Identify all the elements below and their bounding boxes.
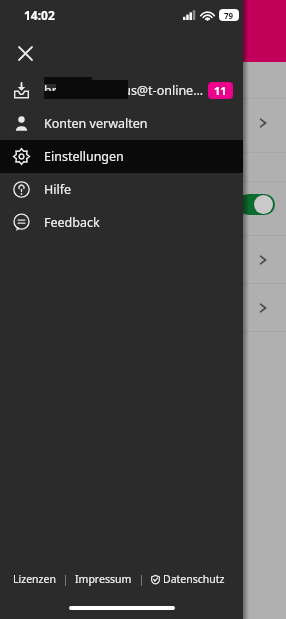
button[interactable]: Lizenzen <box>12 568 57 590</box>
staticText: | <box>133 572 150 586</box>
staticText: Impressum <box>75 572 132 586</box>
staticText: Datenschutz <box>163 572 225 586</box>
button[interactable]: Konten verwalten <box>0 107 243 140</box>
staticText: Hilfe <box>44 181 72 198</box>
staticText: 79 <box>224 10 234 21</box>
staticText: Feedback <box>44 214 100 231</box>
button[interactable]: Feedback <box>0 206 243 239</box>
button[interactable]: Hilfe <box>0 173 243 206</box>
staticText: 14:02 <box>24 7 55 23</box>
button[interactable]: Schließen <box>8 36 42 70</box>
staticText: Konten verwalten <box>44 115 148 132</box>
staticText: Einstellungen <box>44 148 124 165</box>
staticText: 11 <box>214 83 227 98</box>
staticText: | <box>57 572 74 586</box>
button[interactable]: Datenschutz <box>150 568 226 590</box>
staticText: Lizenzen <box>13 572 56 586</box>
button[interactable]: brigitte.nienaus@t-online... <box>0 74 243 107</box>
button[interactable]: Impressum <box>74 568 133 590</box>
staticText: brigitte.nienaus@t-online... <box>44 82 204 99</box>
button[interactable]: Einstellungen <box>0 140 243 173</box>
